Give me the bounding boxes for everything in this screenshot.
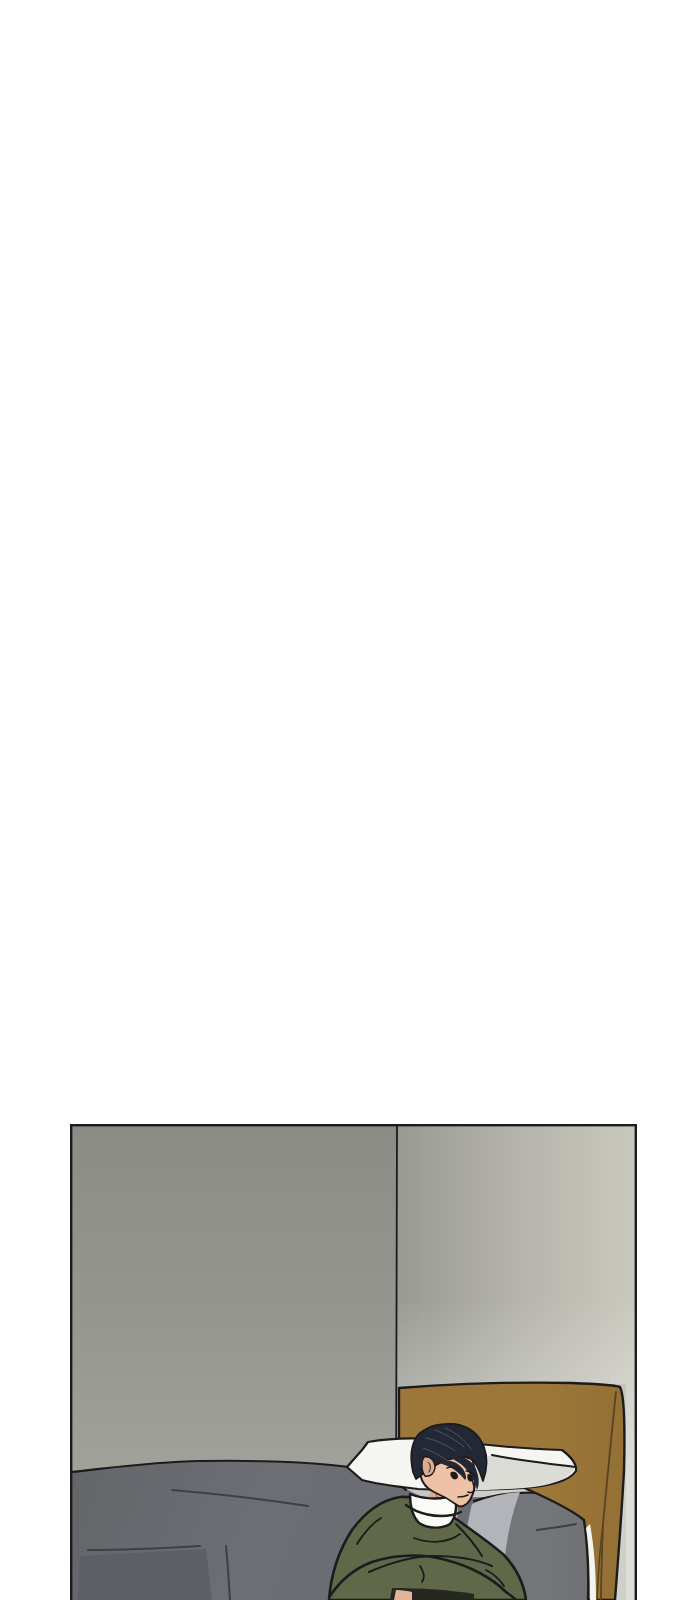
button[interactable]: Webtoon episode page xyxy=(0,0,690,1600)
